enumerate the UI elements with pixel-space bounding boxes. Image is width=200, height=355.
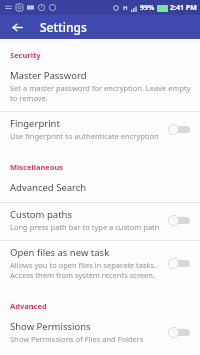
button[interactable]: Toggle [168, 213, 192, 227]
staticText: Settings [40, 19, 87, 35]
button[interactable]: Open files as new task [0, 241, 200, 286]
button[interactable]: Fingerprint [0, 112, 200, 147]
button[interactable]: Toggle [168, 122, 192, 136]
staticText: Set a master password for encryption. Le… [10, 83, 191, 103]
staticText: Long press path bar to type a custom pat… [10, 222, 160, 232]
staticText: 2:41 PM [170, 3, 197, 13]
staticText: Show Permissions [10, 320, 91, 333]
button[interactable]: Master Password [0, 64, 200, 109]
staticText: 99% [140, 3, 155, 13]
button[interactable]: Back [8, 18, 26, 36]
staticText: Show Permissions of Files and Folders [10, 334, 144, 344]
staticText: H [123, 4, 128, 12]
staticText: Advanced [10, 301, 47, 311]
staticText: Security [10, 50, 41, 60]
staticText: Allows you to open files in separate tas… [10, 260, 157, 280]
staticText: Open files as new task [10, 246, 110, 259]
staticText: Miscellaneous [10, 162, 64, 172]
staticText: Use fingerprint to authenticate encrypti… [10, 131, 159, 141]
button[interactable]: Custom paths [0, 203, 200, 238]
button[interactable]: Show Permissions [0, 315, 200, 350]
staticText: Fingerprint [10, 117, 60, 130]
staticText: Master Password [10, 69, 87, 82]
staticText: Advanced Search [10, 181, 87, 194]
staticText: Custom paths [10, 208, 72, 221]
button[interactable]: Toggle [168, 256, 192, 270]
button[interactable]: Advanced Search [0, 176, 200, 200]
button[interactable]: Toggle [168, 325, 192, 339]
